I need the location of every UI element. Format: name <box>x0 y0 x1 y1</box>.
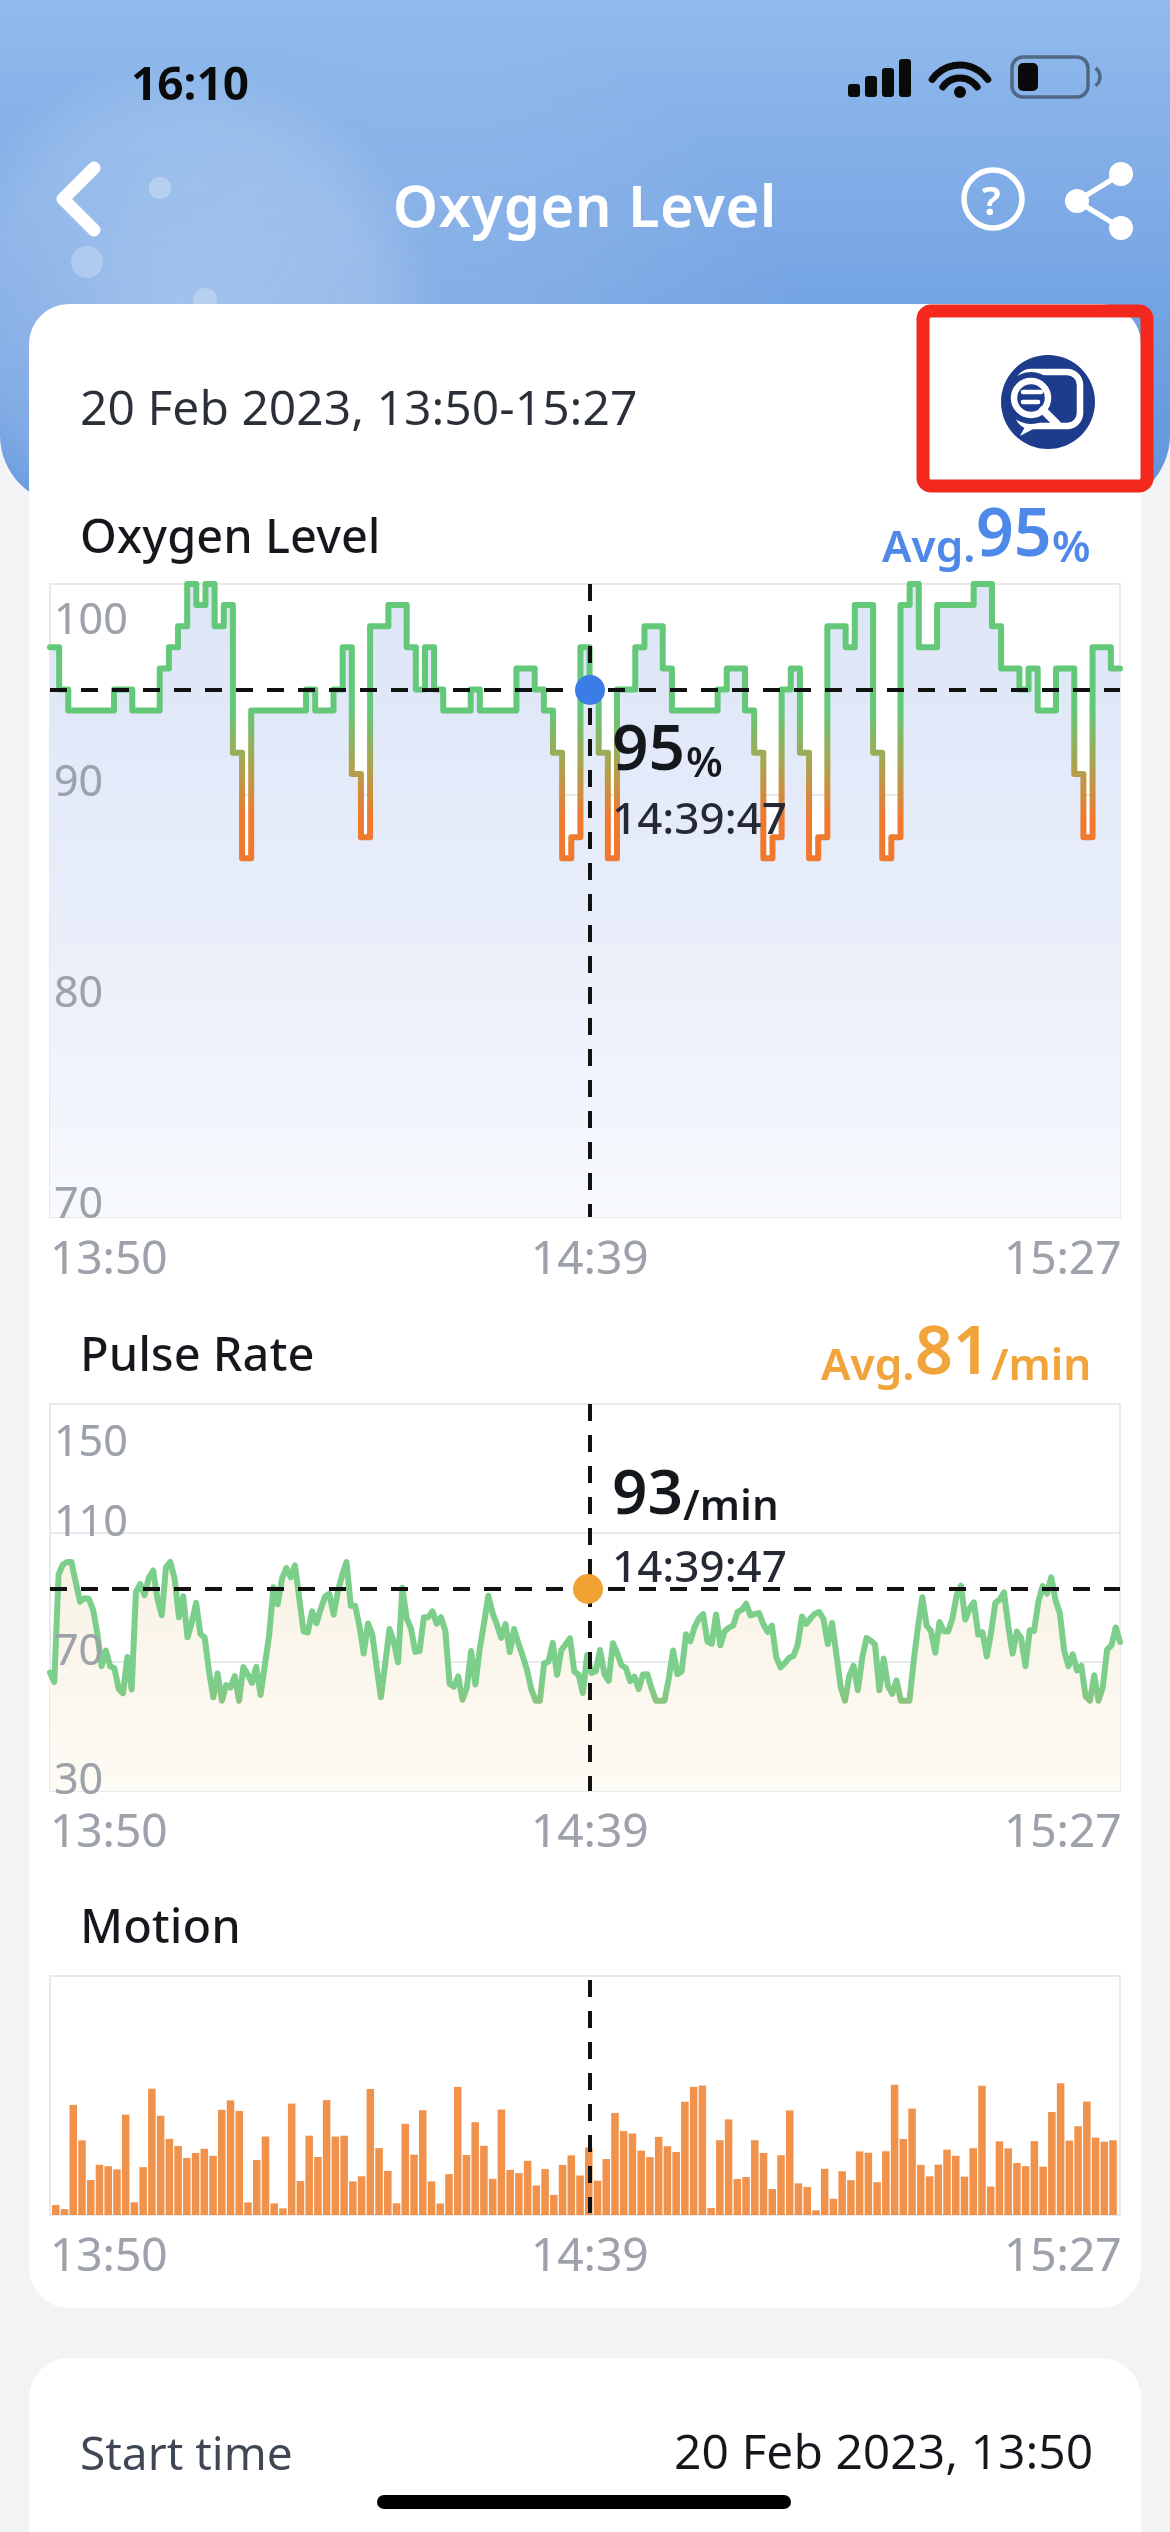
staticText: Avg. <box>882 515 976 575</box>
staticText: 80 <box>54 961 104 1020</box>
staticText: 14:39:47 <box>612 787 787 847</box>
staticText: Oxygen Level <box>80 503 381 567</box>
staticText: Pulse Rate <box>80 1321 315 1385</box>
staticText: /min <box>991 1333 1092 1393</box>
staticText: 15:27 <box>1004 2222 1122 2285</box>
staticText: 90 <box>54 750 104 809</box>
staticText: /min <box>683 1475 779 1532</box>
staticText: Avg. <box>821 1333 915 1393</box>
staticText: 15:27 <box>1004 1798 1122 1861</box>
staticText: 13:50 <box>50 1798 168 1861</box>
staticText: 20 Feb 2023, 13:50-15:27 <box>80 374 638 439</box>
staticText: % <box>686 732 723 789</box>
staticText: 150 <box>54 1410 128 1469</box>
staticText: 14:39:47 <box>612 1535 787 1595</box>
staticText: 14:39 <box>531 1798 649 1861</box>
staticText: Start time <box>80 2421 293 2484</box>
staticText: 70 <box>54 1619 104 1678</box>
staticText: 20 Feb 2023, 13:50 <box>674 2418 1094 2483</box>
button[interactable] <box>48 156 112 244</box>
staticText: 93 <box>612 1448 683 1532</box>
staticText: 95 <box>976 485 1052 575</box>
staticText: 13:50 <box>50 2222 168 2285</box>
button[interactable] <box>959 165 1027 233</box>
button[interactable] <box>1001 355 1095 449</box>
staticText: 95 <box>612 702 686 789</box>
staticText: 14:39 <box>531 1225 649 1288</box>
staticText: % <box>1052 515 1091 575</box>
staticText: 70 <box>54 1172 104 1231</box>
staticText: 81 <box>915 1303 991 1393</box>
staticText: 14:39 <box>531 2222 649 2285</box>
staticText: 110 <box>54 1490 128 1549</box>
staticText: 16:10 <box>131 51 250 114</box>
staticText: 13:50 <box>50 1225 168 1288</box>
staticText: Oxygen Level <box>393 166 778 244</box>
staticText: 15:27 <box>1004 1225 1122 1288</box>
staticText: ? <box>982 172 1001 226</box>
button[interactable] <box>1062 165 1134 237</box>
staticText: 30 <box>54 1748 104 1807</box>
staticText: Motion <box>80 1893 241 1957</box>
button[interactable] <box>29 2358 1141 2532</box>
staticText: 100 <box>54 588 128 647</box>
